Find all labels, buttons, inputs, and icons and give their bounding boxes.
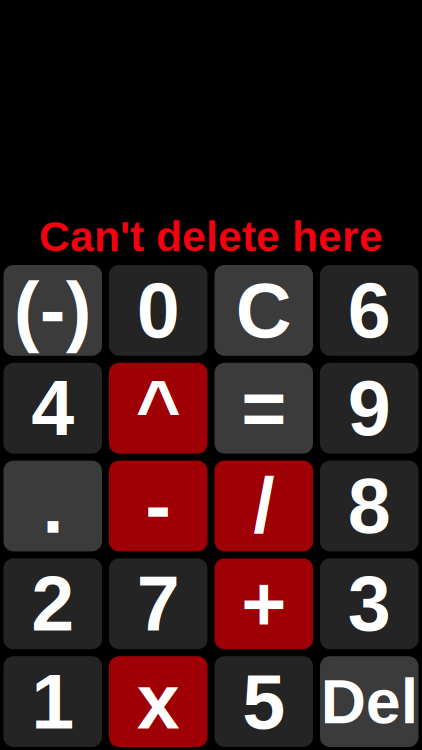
- staticText: +: [241, 561, 286, 647]
- staticText: x: [137, 658, 180, 745]
- staticText: /: [253, 463, 274, 549]
- staticText: Can't delete here: [39, 213, 383, 260]
- button[interactable]: 1: [3, 656, 102, 747]
- button[interactable]: 4: [3, 363, 102, 454]
- staticText: 0: [137, 267, 180, 354]
- staticText: Del: [321, 667, 418, 737]
- staticText: 4: [31, 365, 74, 451]
- staticText: C: [236, 267, 292, 354]
- button[interactable]: (-): [3, 265, 102, 356]
- button[interactable]: Del: [320, 656, 418, 747]
- button[interactable]: -: [109, 461, 207, 551]
- staticText: 8: [348, 463, 391, 549]
- button[interactable]: C: [214, 265, 313, 356]
- button[interactable]: 7: [109, 558, 207, 649]
- staticText: 9: [348, 365, 391, 451]
- staticText: 2: [31, 561, 74, 647]
- staticText: (-): [14, 267, 92, 354]
- staticText: 7: [137, 561, 180, 647]
- button[interactable]: x: [109, 656, 207, 747]
- button[interactable]: 8: [320, 461, 418, 551]
- button[interactable]: 6: [320, 265, 418, 356]
- button[interactable]: =: [214, 363, 313, 454]
- button[interactable]: 9: [320, 363, 418, 454]
- staticText: 3: [348, 561, 391, 647]
- staticText: 5: [242, 658, 285, 745]
- button[interactable]: 5: [214, 656, 313, 747]
- button[interactable]: +: [214, 558, 313, 649]
- staticText: ^: [136, 365, 181, 451]
- staticText: 1: [31, 658, 74, 745]
- button[interactable]: /: [214, 461, 313, 551]
- button[interactable]: 0: [109, 265, 207, 356]
- staticText: -: [145, 463, 171, 549]
- staticText: =: [241, 365, 286, 451]
- staticText: .: [42, 463, 63, 549]
- button[interactable]: ^: [109, 363, 207, 454]
- button[interactable]: 2: [3, 558, 102, 649]
- staticText: 6: [348, 267, 391, 354]
- button[interactable]: 3: [320, 558, 418, 649]
- button[interactable]: .: [3, 461, 102, 551]
